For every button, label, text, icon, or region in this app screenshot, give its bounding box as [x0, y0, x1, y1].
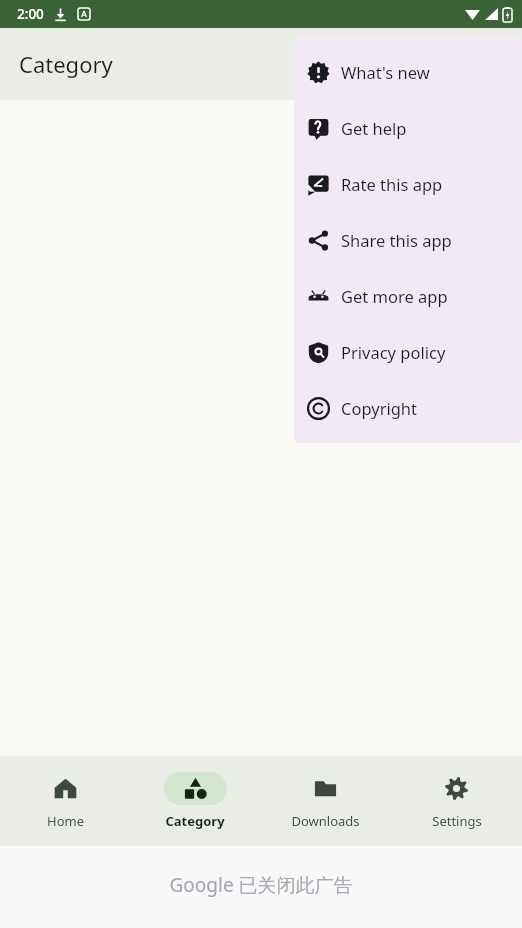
staticText: Category [165, 812, 225, 830]
button[interactable]: Get more app [294, 268, 522, 324]
button[interactable]: Settings [391, 756, 522, 846]
staticText: Copyright [341, 397, 418, 419]
staticText: Privacy policy [341, 341, 446, 363]
button[interactable]: Downloads [260, 756, 391, 846]
staticText: Get more app [341, 285, 448, 307]
button[interactable]: Category [130, 756, 260, 846]
staticText: Settings [432, 812, 482, 830]
button[interactable]: Get help [294, 100, 522, 156]
button[interactable]: Home [0, 756, 130, 846]
staticText: Category [19, 49, 113, 79]
staticText: Google 已关闭此广告 [169, 872, 353, 898]
staticText: Rate this app [341, 173, 443, 195]
staticText: What's new [341, 61, 430, 83]
button[interactable]: Privacy policy [294, 324, 522, 380]
staticText: 2:00 [17, 5, 44, 23]
staticText: Get help [341, 117, 407, 139]
button[interactable]: What's new [294, 44, 522, 100]
button[interactable]: Share this app [294, 212, 522, 268]
button[interactable]: Copyright [294, 380, 522, 436]
staticText: Share this app [341, 229, 452, 251]
staticText: Downloads [291, 812, 360, 830]
button[interactable]: Rate this app [294, 156, 522, 212]
staticText: Home [47, 812, 84, 830]
